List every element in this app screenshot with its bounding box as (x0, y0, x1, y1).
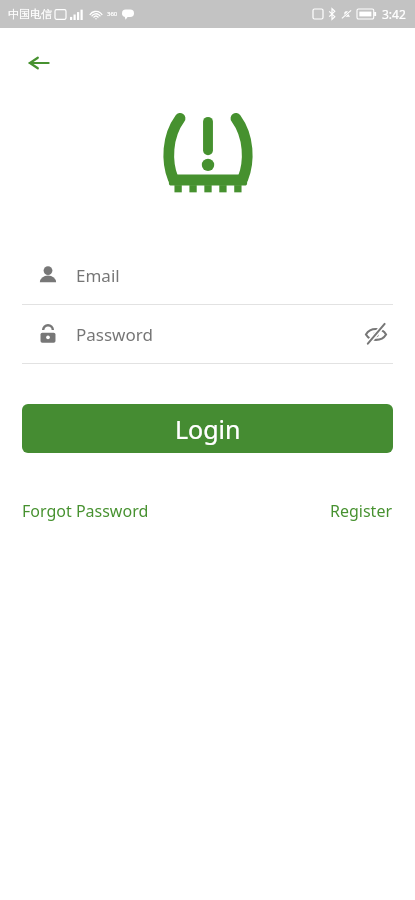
button[interactable]: Back (18, 42, 60, 84)
staticText: 中国电信 (8, 7, 52, 21)
staticText: Email (76, 264, 120, 287)
button[interactable]: Register (330, 500, 393, 522)
staticText: Password (76, 323, 153, 346)
staticText: Login (175, 412, 241, 446)
button[interactable]: Login (22, 404, 393, 453)
button[interactable]: Email (0, 246, 415, 304)
staticText: Forgot Password (22, 500, 149, 522)
button[interactable]: Password (0, 305, 415, 363)
staticText: 360 (107, 10, 118, 18)
staticText: 3:42 (382, 6, 406, 22)
button[interactable]: Forgot Password (22, 500, 149, 522)
staticText: Register (330, 500, 393, 522)
button[interactable]: Toggle password visibility (355, 313, 397, 355)
